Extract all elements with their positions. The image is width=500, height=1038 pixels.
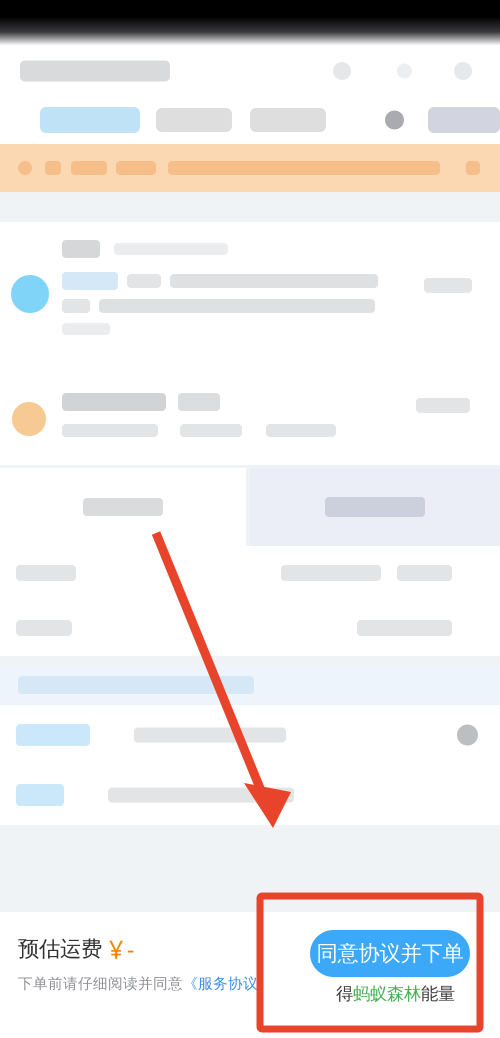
button[interactable]: 《服务协议	[183, 975, 258, 993]
button[interactable]: Merchant	[0, 370, 500, 465]
button[interactable]: 同意协议并下单	[310, 930, 470, 977]
staticText: 能量	[421, 983, 455, 1004]
staticText: 蚂蚁森林	[353, 983, 421, 1004]
button[interactable]	[250, 108, 326, 132]
button[interactable]: Service	[0, 765, 500, 825]
button[interactable]: Sort	[385, 110, 404, 129]
button[interactable]: More	[454, 62, 472, 80]
button[interactable]: Promotion	[0, 144, 500, 192]
button[interactable]: Delivery address	[0, 222, 500, 370]
button[interactable]: Coupon	[0, 705, 500, 765]
staticText: ¥	[109, 932, 123, 966]
button[interactable]	[40, 107, 140, 133]
staticText: -	[127, 934, 134, 964]
button[interactable]	[156, 108, 232, 132]
button[interactable]: Messages	[397, 63, 412, 78]
button[interactable]	[428, 107, 500, 133]
staticText: 《服务协议	[183, 975, 258, 993]
staticText: 预估运费	[18, 936, 102, 962]
button[interactable]: Express option	[250, 468, 500, 546]
staticText: 下单前请仔细阅读并同意	[18, 975, 183, 993]
button[interactable]: Order detail row	[0, 600, 500, 656]
button[interactable]: Notice	[0, 665, 500, 705]
button[interactable]: Order detail row	[0, 546, 500, 600]
staticText: 得	[336, 983, 353, 1004]
staticText: 同意协议并下单	[316, 940, 463, 967]
button[interactable]: Delivery option	[0, 468, 246, 546]
button[interactable]: Scan	[333, 62, 351, 80]
